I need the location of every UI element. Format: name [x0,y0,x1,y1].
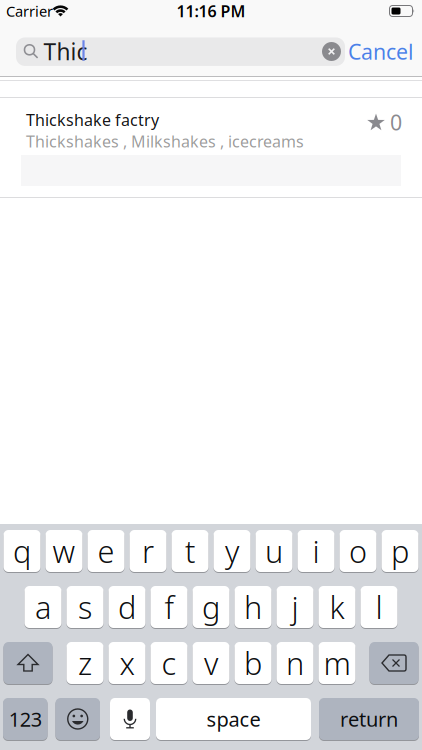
staticText: h [244,587,262,627]
staticText: 0 [390,108,402,136]
staticText: 123 [9,706,42,732]
button[interactable]: g [192,585,229,628]
button[interactable]: l [360,585,397,628]
staticText: return [340,706,398,732]
button[interactable]: Cancel [348,37,414,66]
staticText: w [52,531,75,571]
button[interactable]: Delete [369,641,418,684]
staticText: s [78,587,92,627]
staticText: n [286,643,304,683]
button[interactable]: Clear text [322,42,341,61]
button[interactable]: e [87,529,124,572]
staticText: Carrier [6,1,53,21]
staticText: z [78,643,92,683]
staticText: a [35,587,51,627]
button[interactable]: n [276,641,313,684]
staticText: v [204,643,218,683]
staticText: b [244,643,262,683]
button[interactable]: y [213,529,250,572]
button[interactable]: f [150,585,187,628]
staticText: Thic [43,36,87,66]
button[interactable]: return [319,697,419,740]
staticText: y [225,531,239,571]
staticText: x [119,643,134,683]
button[interactable]: i [297,529,334,572]
staticText: m [323,643,350,683]
button[interactable]: s [66,585,103,628]
staticText: c [161,643,176,683]
staticText: f [164,587,173,627]
staticText: j [291,587,298,627]
staticText: Thickshakes , Milkshakes , icecreams [26,131,304,152]
button[interactable]: z [66,641,103,684]
button[interactable]: q [3,529,40,572]
button[interactable]: b [234,641,271,684]
staticText: q [13,531,31,571]
button[interactable]: Emoji [55,697,100,740]
staticText: u [265,531,283,571]
button[interactable]: Search field [16,37,345,66]
staticText: i [312,531,319,571]
staticText: t [185,531,195,571]
button[interactable]: u [255,529,292,572]
staticText: space [206,706,260,732]
button[interactable]: Numbers [3,697,47,740]
button[interactable]: x [108,641,145,684]
button[interactable]: w [45,529,82,572]
staticText: p [391,531,409,571]
staticText: 11:16 PM [176,0,245,22]
staticText: l [375,587,382,627]
staticText: o [349,531,367,571]
button[interactable]: Dictate [110,697,150,740]
button[interactable]: o [339,529,376,572]
button[interactable]: a [24,585,61,628]
button[interactable]: Shift [3,641,52,684]
button[interactable]: j [276,585,313,628]
button[interactable]: t [171,529,208,572]
staticText: g [202,587,220,627]
button[interactable]: r [129,529,166,572]
button[interactable]: c [150,641,187,684]
staticText: r [142,531,154,571]
staticText: d [118,587,136,627]
button[interactable]: Thickshake factry [0,97,422,196]
button[interactable]: k [318,585,355,628]
staticText: k [329,587,344,627]
button[interactable]: p [381,529,418,572]
button[interactable]: v [192,641,229,684]
button[interactable]: d [108,585,145,628]
button[interactable]: h [234,585,271,628]
button[interactable]: space [156,697,311,740]
staticText: Cancel [348,37,414,66]
button[interactable]: m [318,641,355,684]
staticText: e [97,531,114,571]
staticText: Thickshake factry [26,109,159,130]
